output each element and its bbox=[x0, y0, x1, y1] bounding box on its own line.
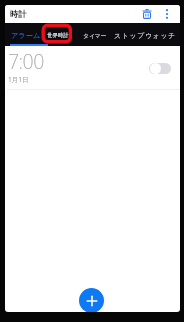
staticText: 1月1日 bbox=[8, 75, 29, 84]
button[interactable]: タイマー bbox=[83, 32, 107, 39]
staticText: アラーム bbox=[11, 31, 41, 40]
button[interactable]: アラーム bbox=[11, 31, 41, 40]
button[interactable] bbox=[161, 8, 173, 20]
staticText: 世界時計 bbox=[47, 32, 69, 39]
button[interactable]: 7:00 bbox=[5, 46, 180, 90]
button[interactable] bbox=[140, 7, 154, 21]
button[interactable] bbox=[79, 288, 104, 312]
button[interactable]: ストップウォッチ bbox=[114, 31, 177, 40]
staticText: タイマー bbox=[83, 32, 107, 39]
button[interactable]: 世界時計 bbox=[47, 32, 69, 39]
staticText: 7:00 bbox=[8, 48, 44, 75]
staticText: 時計 bbox=[10, 9, 27, 19]
staticText: ストップウォッチ bbox=[114, 31, 177, 40]
button[interactable] bbox=[149, 63, 171, 74]
